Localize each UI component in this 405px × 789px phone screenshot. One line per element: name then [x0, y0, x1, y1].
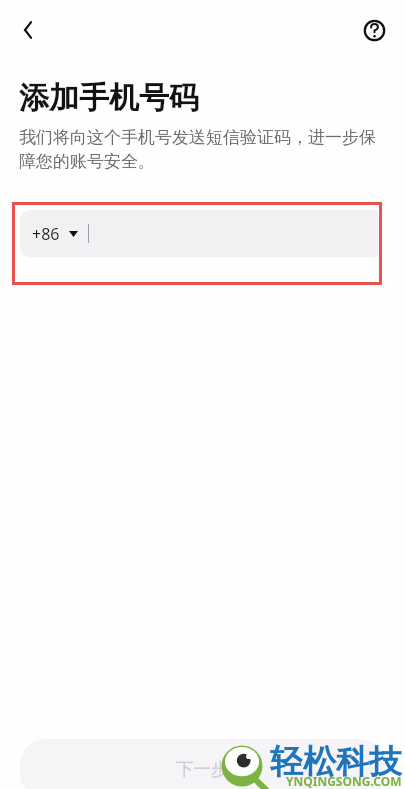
staticText: 轻松科技	[270, 741, 402, 783]
staticText: YNQINGSONG.COM	[286, 773, 402, 789]
staticText: 下一步	[176, 758, 229, 780]
button[interactable]: 下一步	[20, 739, 385, 789]
button[interactable]: Back	[12, 12, 48, 48]
staticText: +86	[32, 223, 60, 245]
button[interactable]: Help	[356, 12, 393, 49]
button[interactable]: Phone number	[20, 210, 378, 257]
staticText: 我们将向这个手机号发送短信验证码，进一步保障您的账号安全。	[19, 127, 386, 172]
staticText: 添加手机号码	[19, 79, 199, 117]
